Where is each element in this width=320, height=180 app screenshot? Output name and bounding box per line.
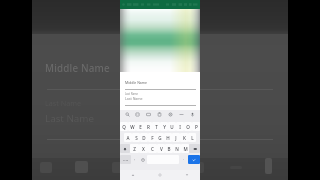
staticText: D [142,135,146,141]
staticText: Last Name [125,92,138,96]
button[interactable]: W [128,122,136,131]
staticText: H [166,135,170,141]
button[interactable]: Voice input [187,110,198,119]
staticText: E [139,124,142,130]
button[interactable]: O [184,122,192,131]
staticText: Middle Name [45,62,110,75]
button[interactable]: Stickers [132,110,143,119]
staticText: J [175,135,177,141]
button[interactable]: Symbols [120,155,131,164]
button[interactable]: Backspace [189,144,200,153]
button[interactable]: Settings [165,110,176,119]
staticText: R [147,124,150,130]
staticText: F [151,135,154,141]
button[interactable]: R [144,122,152,131]
button[interactable]: Y [160,122,168,131]
button[interactable]: N [173,144,181,153]
button[interactable]: V [157,144,165,153]
button[interactable]: U [168,122,176,131]
staticText: W [130,124,135,130]
staticText: M [183,146,188,152]
staticText: V [160,146,163,152]
button[interactable]: Home [155,170,165,180]
button[interactable]: D [140,133,148,142]
button[interactable]: B [165,144,173,153]
staticText: K [183,135,186,141]
staticText: O [186,124,190,130]
button[interactable]: Z [130,144,139,153]
button[interactable]: H [164,133,172,142]
staticText: X [142,146,145,152]
button[interactable]: Enter [188,155,200,164]
staticText: Last Name [125,96,143,101]
staticText: Y [163,124,166,130]
staticText: L [191,135,194,141]
button[interactable]: Q [120,122,128,131]
button[interactable]: K [180,133,188,142]
staticText: I [179,124,181,130]
staticText: B [167,146,171,152]
button[interactable]: Recents [182,170,192,180]
staticText: Z [133,146,136,152]
button[interactable]: Comma [131,155,138,164]
button[interactable]: L [188,133,196,142]
button[interactable]: Emoji [138,155,147,164]
staticText: C [151,146,154,152]
button[interactable]: GIF [143,110,154,119]
button[interactable]: More [176,110,187,119]
staticText: ?123 [123,158,129,161]
button[interactable]: J [172,133,180,142]
staticText: N [175,146,179,152]
button[interactable]: Clipboard [154,110,165,119]
button[interactable]: I [176,122,184,131]
button[interactable]: P [192,122,200,131]
staticText: Last Name [45,112,95,125]
staticText: G [158,135,162,141]
staticText: S [135,135,138,141]
button[interactable]: M [181,144,189,153]
button[interactable]: A [124,133,132,142]
button[interactable]: Search [122,110,132,119]
button[interactable]: T [152,122,160,131]
staticText: A [126,135,130,141]
staticText: T [155,124,158,130]
button[interactable]: Shift [120,144,130,153]
button[interactable]: S [132,133,140,142]
staticText: U [170,124,174,130]
staticText: Middle Name [125,80,148,85]
staticText: Q [122,124,126,130]
button[interactable]: Back [128,170,138,180]
button[interactable]: X [139,144,148,153]
staticText: P [195,124,198,130]
button[interactable]: E [136,122,144,131]
button[interactable]: C [148,144,157,153]
button[interactable]: F [148,133,156,142]
button[interactable]: G [156,133,164,142]
